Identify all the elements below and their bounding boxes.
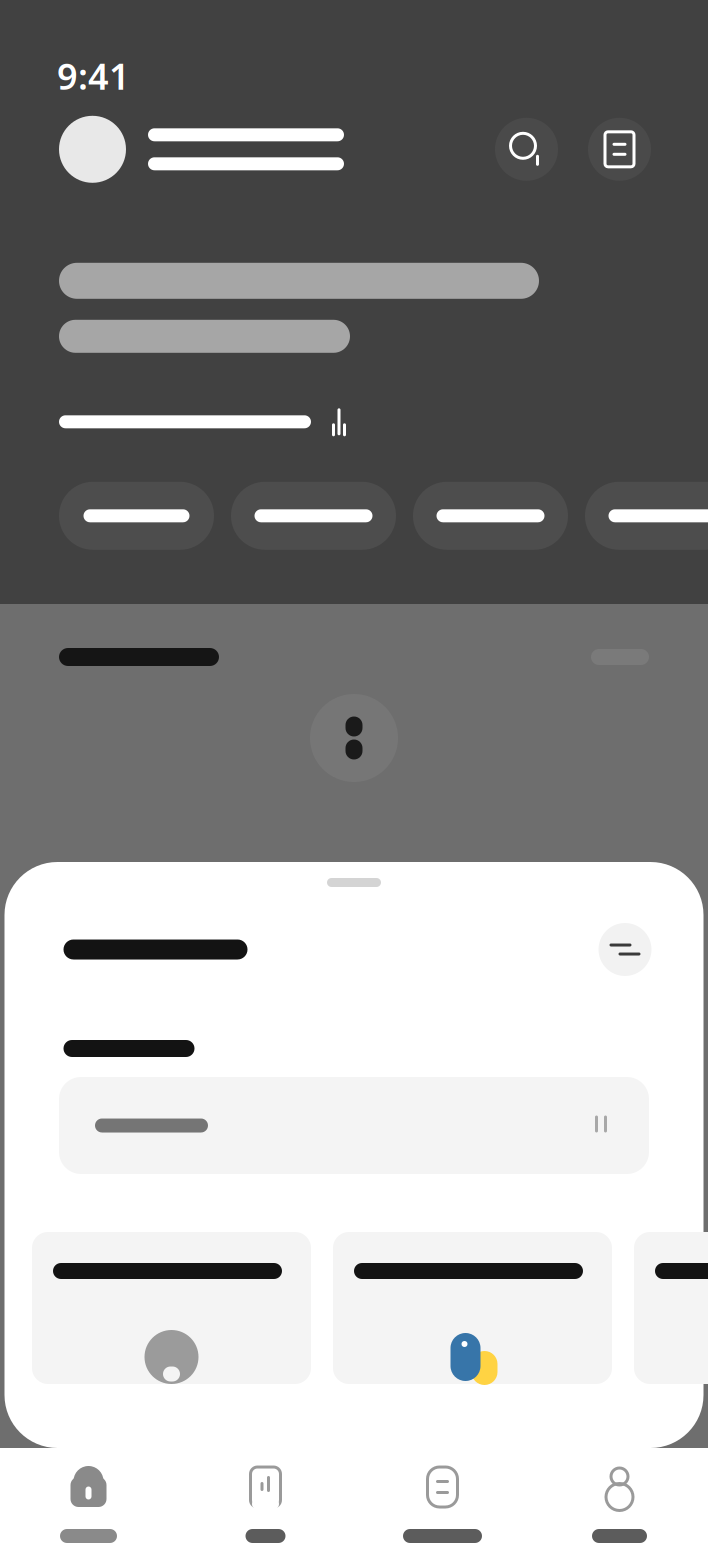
button[interactable] <box>585 482 708 550</box>
button[interactable]: Orders <box>354 1448 531 1567</box>
button[interactable] <box>59 1077 649 1174</box>
button[interactable] <box>634 1232 708 1384</box>
button[interactable]: Close <box>598 923 651 976</box>
button[interactable] <box>333 1232 612 1384</box>
button[interactable] <box>231 482 396 550</box>
button[interactable]: Home <box>0 1448 177 1567</box>
button[interactable]: Profile <box>531 1448 708 1567</box>
button[interactable]: Saved <box>177 1448 354 1567</box>
button[interactable] <box>32 1232 311 1384</box>
button[interactable] <box>413 482 568 550</box>
staticText: 9:41 <box>57 52 130 100</box>
button[interactable]: Search <box>495 118 558 181</box>
button[interactable]: Orders <box>588 118 651 181</box>
button[interactable] <box>59 482 214 550</box>
